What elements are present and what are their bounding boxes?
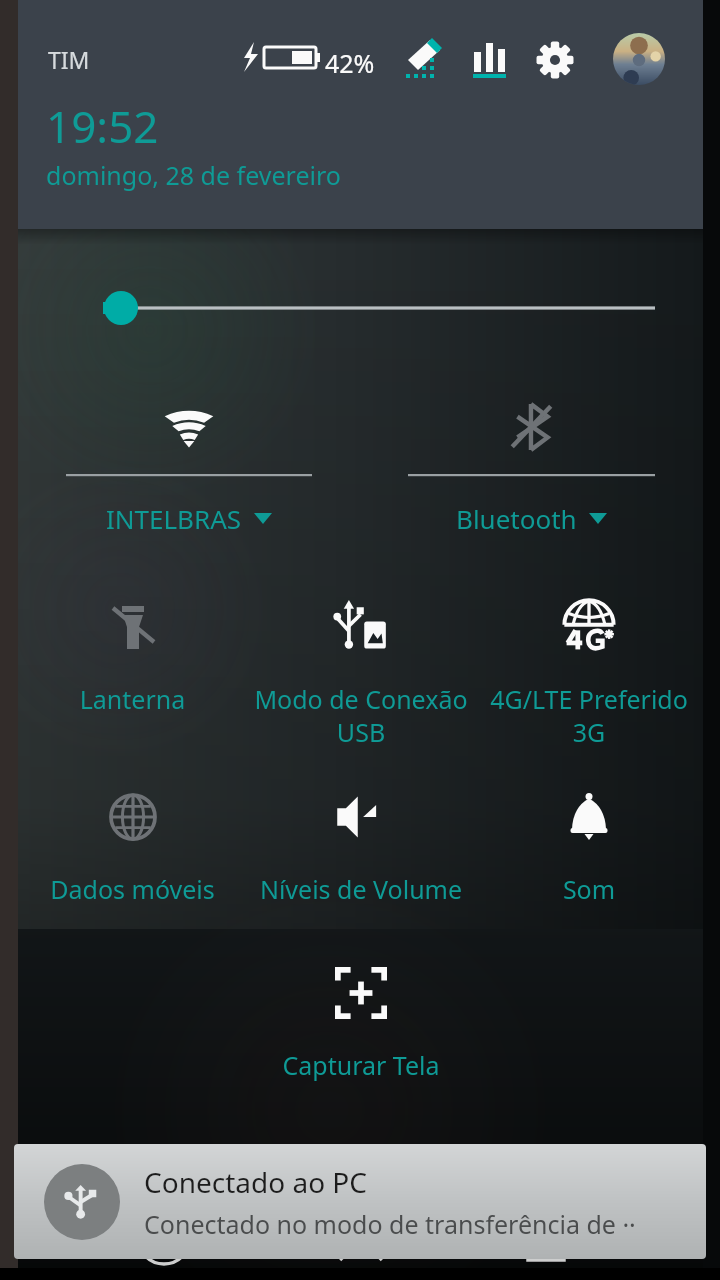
staticText: Capturar Tela [247, 1048, 475, 1082]
staticText: domingo, 28 de fevereiro [46, 158, 341, 192]
staticText: TIM [48, 44, 90, 75]
staticText: Som [475, 872, 703, 906]
button[interactable]: Data usage [468, 38, 512, 82]
button[interactable]: Conectado ao PC [14, 1144, 706, 1259]
button[interactable]: Edit [400, 36, 446, 82]
staticText: Dados móveis [18, 872, 247, 906]
staticText: Modo de Conexão USB [247, 682, 475, 749]
staticText: 42% [325, 46, 375, 80]
button[interactable]: 4G/LTE Preferido 3G [475, 580, 703, 770]
button[interactable]: Settings [533, 38, 577, 82]
button[interactable]: Som [475, 770, 703, 946]
button[interactable]: Lanterna [18, 580, 247, 770]
staticText: Níveis de Volume [247, 872, 475, 906]
button[interactable]: Capturar Tela [247, 946, 475, 1122]
button[interactable]: Bluetooth [360, 382, 703, 557]
button[interactable]: Dados móveis [18, 770, 247, 946]
button[interactable]: Níveis de Volume [247, 770, 475, 946]
button[interactable]: Profile [613, 33, 665, 85]
button[interactable]: Brightness [18, 276, 703, 340]
staticText: Conectado ao PC [144, 1163, 367, 1201]
staticText: Conectado no modo de transferência de ·· [144, 1207, 636, 1241]
button[interactable]: Modo de Conexão USB [247, 580, 475, 770]
staticText: 4G/LTE Preferido 3G [475, 682, 703, 749]
staticText: Bluetooth [456, 501, 577, 536]
button[interactable]: INTELBRAS [18, 382, 360, 557]
staticText: 19:52 [46, 96, 159, 156]
staticText: INTELBRAS [106, 501, 242, 536]
staticText: Lanterna [18, 682, 247, 716]
